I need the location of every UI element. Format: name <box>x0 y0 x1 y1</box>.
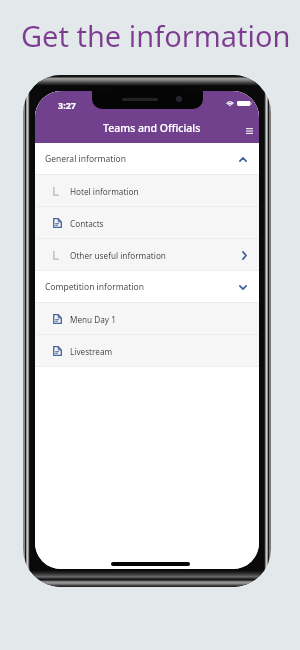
button[interactable]: Menu <box>241 123 257 139</box>
staticText: Teams and Officials <box>103 121 201 135</box>
button[interactable]: General information <box>35 143 259 175</box>
button[interactable]: Contacts <box>35 207 259 239</box>
button[interactable]: Competition information <box>35 271 259 303</box>
button[interactable]: Other useful information <box>35 239 259 271</box>
button[interactable]: Livestream <box>35 335 259 367</box>
button[interactable]: Hotel information <box>35 175 259 207</box>
staticText: Competition information <box>45 281 145 293</box>
staticText: General information <box>45 153 126 165</box>
button[interactable]: Menu Day 1 <box>35 303 259 335</box>
staticText: Contacts <box>70 218 104 229</box>
staticText: Other useful information <box>70 250 166 261</box>
staticText: Livestream <box>70 346 113 357</box>
staticText: Hotel information <box>70 186 139 197</box>
staticText: 3:27 <box>58 99 76 111</box>
staticText: Get the information <box>21 16 291 55</box>
staticText: Menu Day 1 <box>70 314 116 325</box>
